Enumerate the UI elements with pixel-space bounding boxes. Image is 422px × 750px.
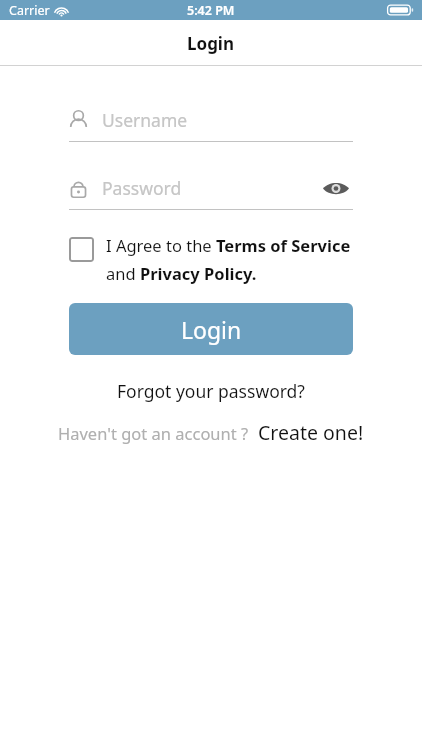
staticText: Terms of Service: [216, 234, 351, 256]
staticText: Login: [181, 314, 242, 345]
staticText: Password: [102, 176, 182, 200]
button[interactable]: Forgot your password?: [105, 376, 317, 406]
other: Agree checkbox: [69, 237, 94, 262]
button[interactable]: Create one!: [258, 415, 364, 450]
button[interactable]: Username: [69, 103, 353, 137]
staticText: I Agree to the: [106, 234, 216, 256]
button[interactable]: Login: [69, 303, 353, 355]
button[interactable]: Show password: [319, 175, 353, 201]
button[interactable]: Agree checkbox: [69, 234, 362, 284]
button[interactable]: Haven't got an account ?: [58, 418, 249, 448]
staticText: Login: [187, 32, 235, 55]
staticText: Privacy Policy.: [140, 262, 257, 284]
button[interactable]: Password: [69, 171, 353, 205]
staticText: Forgot your password?: [117, 379, 305, 403]
staticText: Create one!: [258, 419, 364, 446]
staticText: Carrier: [9, 2, 50, 19]
staticText: 5:42 PM: [187, 2, 235, 19]
staticText: Haven't got an account ?: [58, 422, 249, 444]
staticText: Username: [102, 108, 188, 132]
staticText: and: [106, 262, 140, 284]
